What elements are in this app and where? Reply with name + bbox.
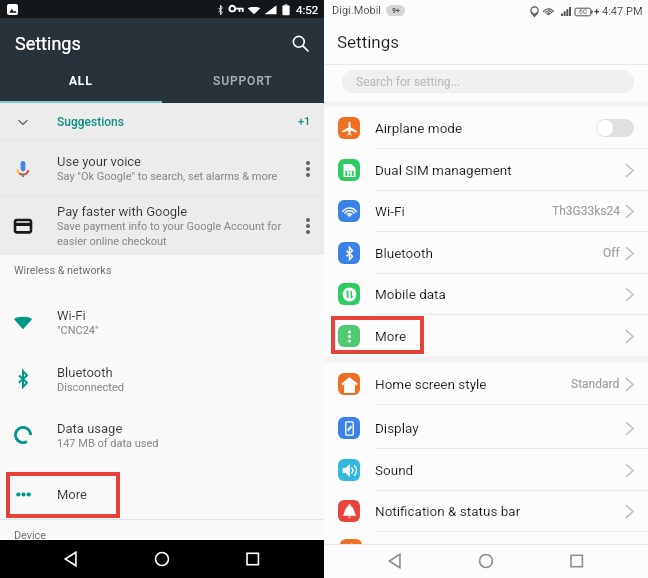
button[interactable]: Search for setting... [342, 70, 634, 93]
button[interactable]: Pay faster with Google [0, 197, 324, 255]
staticText: +1 [298, 115, 311, 128]
staticText: Device [14, 529, 46, 542]
button[interactable]: Bluetooth [0, 351, 324, 407]
staticText: Sound [375, 462, 414, 478]
staticText: Say "Ok Google" to search, set alarms & … [57, 170, 278, 183]
button[interactable]: Airplane mode toggle [596, 119, 634, 137]
staticText: Pay faster with Google [57, 204, 188, 219]
staticText: Wi-Fi [375, 203, 405, 219]
button[interactable]: Bluetooth [324, 232, 648, 274]
staticText: Wireless & networks [14, 264, 112, 277]
button[interactable]: Wi-Fi [324, 190, 648, 232]
button[interactable]: Airplane mode [324, 107, 648, 149]
button[interactable]: Use your voice [0, 141, 324, 196]
staticText: Standard [571, 377, 620, 391]
staticText: ALL [69, 74, 93, 88]
staticText: Data usage [57, 421, 123, 436]
button[interactable]: More options [292, 197, 324, 255]
staticText: Search for setting... [356, 75, 461, 89]
button[interactable]: Mobile data [324, 273, 648, 315]
button[interactable]: Notification & status bar [324, 490, 648, 532]
staticText: Digi.Mobil [332, 4, 382, 17]
button[interactable]: Dual SIM management [324, 149, 648, 191]
staticText: Suggestions [57, 115, 124, 129]
button[interactable]: Display [324, 407, 648, 449]
staticText: Disconnected [57, 381, 124, 394]
staticText: Display [375, 420, 419, 436]
button[interactable]: Suggestions [0, 103, 324, 140]
button[interactable]: More [324, 315, 648, 357]
button[interactable]: Sound [324, 449, 648, 491]
button[interactable]: SUPPORT [162, 63, 324, 98]
staticText: Bluetooth [57, 365, 113, 380]
button[interactable]: More options [292, 141, 324, 196]
button[interactable]: Search [283, 26, 317, 60]
staticText: Settings [337, 32, 400, 52]
staticText: Bluetooth [375, 245, 433, 261]
staticText: Use your voice [57, 154, 141, 169]
staticText: Home screen style [375, 376, 487, 392]
staticText: 60 [579, 8, 587, 16]
staticText: Save payment info to your Google Account… [57, 220, 282, 248]
staticText: 4:52 [296, 3, 319, 16]
staticText: SUPPORT [213, 74, 273, 88]
button[interactable]: Home screen style [324, 363, 648, 405]
staticText: Off [603, 246, 620, 260]
staticText: Mobile data [375, 286, 446, 302]
staticText: More [57, 487, 87, 502]
button[interactable]: Wi-Fi [0, 294, 324, 350]
staticText: 147 MB of data used [57, 437, 159, 450]
staticText: "CNC24" [57, 324, 99, 337]
button[interactable]: More [0, 470, 324, 518]
staticText: Settings [15, 33, 81, 54]
staticText: 4:47 PM [602, 5, 643, 18]
staticText: Notification & status bar [375, 503, 521, 519]
staticText: + [594, 6, 600, 18]
staticText: Th3G33ks24 [552, 204, 620, 218]
button[interactable]: Data usage [0, 407, 324, 463]
staticText: More [375, 328, 407, 344]
button[interactable]: ALL [0, 63, 162, 98]
staticText: Wi-Fi [57, 308, 86, 323]
staticText: 9+ [392, 7, 400, 15]
staticText: Airplane mode [375, 120, 463, 136]
staticText: Dual SIM management [375, 162, 512, 178]
